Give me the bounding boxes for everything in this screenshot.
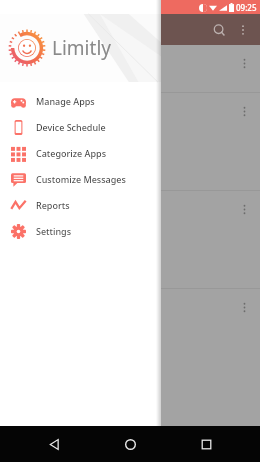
button[interactable]: Back [32,426,76,462]
staticText: Reports [36,199,70,211]
staticText: Configuratie [14,201,90,219]
staticText: Categorize Apps [36,147,107,159]
button[interactable]: Home [108,426,152,462]
button[interactable]: Item options [234,199,254,219]
button[interactable]: Settings [0,218,161,244]
button[interactable]: Configuratie [0,191,260,288]
button[interactable]: Item options [0,289,260,386]
staticText: Limitly [52,35,111,61]
staticText: Device Schedule [36,121,106,133]
button[interactable]: Device Schedule [0,114,161,140]
button[interactable]: Item options [234,101,254,121]
button[interactable]: Recents [184,426,228,462]
button[interactable]: Customize Messages [0,166,161,192]
button[interactable]: Search [206,17,232,43]
staticText: Periode 3 [14,55,72,73]
button[interactable]: Manage Apps [0,88,161,114]
button[interactable]: Item options [234,297,254,317]
button[interactable]: Item options [0,93,260,190]
staticText: Manage Apps [36,95,95,107]
staticText: Customize Messages [36,173,126,185]
button[interactable]: More options [232,19,254,41]
button[interactable]: Item options [234,53,254,73]
button[interactable]: Categorize Apps [0,140,161,166]
button[interactable]: Reports [0,192,161,218]
staticText: 09:25 [236,2,257,13]
button[interactable]: Periode 3 [0,45,260,92]
staticText: Settings [36,225,72,237]
